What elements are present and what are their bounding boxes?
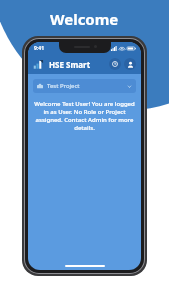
staticText: HSE Smart bbox=[49, 59, 91, 70]
staticText: Test Project bbox=[47, 82, 80, 90]
button[interactable]: Test Project bbox=[33, 79, 136, 93]
staticText: Welcome bbox=[50, 9, 119, 29]
staticText: Welcome Test User! You are logged in as … bbox=[33, 100, 136, 132]
button[interactable]: History bbox=[109, 58, 121, 70]
staticText: 9:41 bbox=[34, 45, 44, 52]
button[interactable]: Account bbox=[124, 58, 136, 70]
